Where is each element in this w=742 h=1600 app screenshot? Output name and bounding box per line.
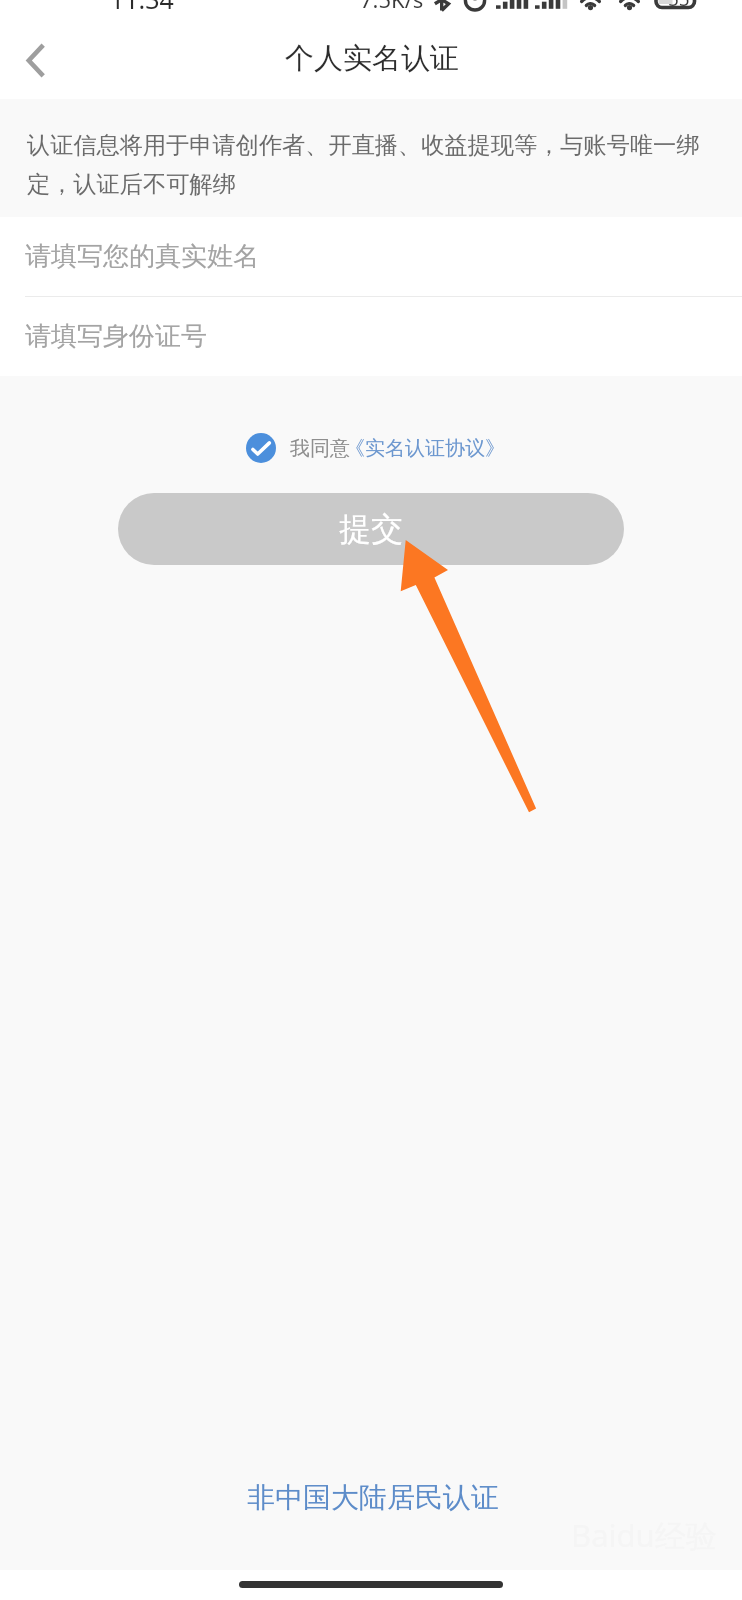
staticText: 我同意 xyxy=(290,436,350,461)
button[interactable]: 提交 xyxy=(118,493,624,565)
staticText: 《实名认证协议》 xyxy=(345,436,505,461)
staticText: 55 xyxy=(668,0,690,12)
staticText: 11:34 xyxy=(110,0,174,16)
button[interactable]: 我同意 xyxy=(246,428,510,468)
button[interactable]: 非中国大陆居民认证 xyxy=(231,1470,515,1525)
button[interactable]: 请填写您的真实姓名 xyxy=(0,217,742,296)
staticText: 请填写身份证号 xyxy=(25,320,207,353)
staticText: 个人实名认证 xyxy=(285,40,459,77)
staticText: 提交 xyxy=(339,509,403,549)
button[interactable]: 请填写身份证号 xyxy=(0,297,742,376)
staticText: 认证信息将用于申请创作者、开直播、收益提现等，与账号唯一绑定，认证后不可解绑 xyxy=(27,131,707,199)
staticText: 非中国大陆居民认证 xyxy=(247,1480,499,1515)
staticText: 请填写您的真实姓名 xyxy=(25,240,259,273)
staticText: 7.5K/s xyxy=(360,0,424,14)
button[interactable]: Back xyxy=(1,25,71,95)
